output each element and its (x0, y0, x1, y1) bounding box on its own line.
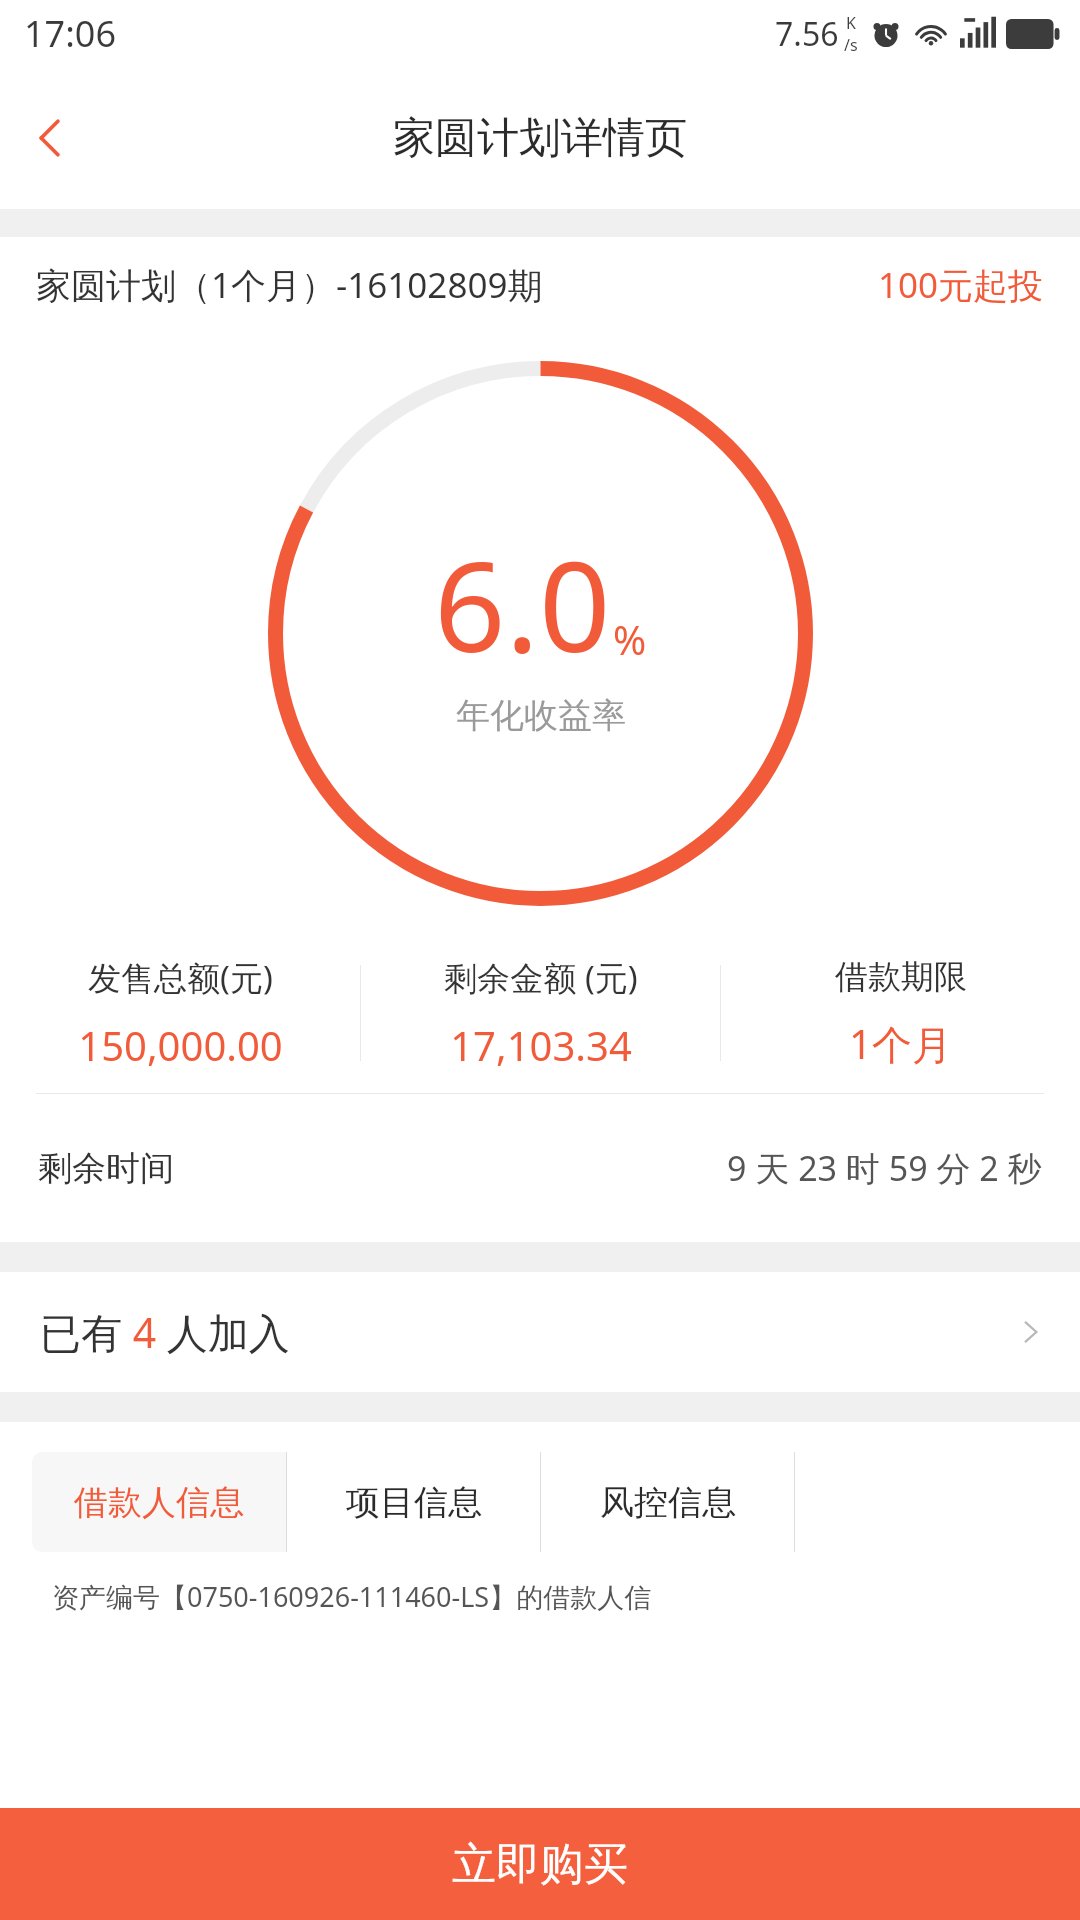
staticText: 9 天 23 时 59 分 2 秒 (727, 1145, 1042, 1191)
button[interactable]: 已有 4 人加入 (0, 1272, 1080, 1392)
staticText: /s (844, 34, 858, 56)
button[interactable]: 借款人信息 (32, 1452, 286, 1552)
staticText: % (613, 612, 647, 666)
staticText: 7.56 (775, 12, 839, 56)
staticText: 100元起投 (878, 261, 1044, 309)
button[interactable]: 项目信息 (287, 1452, 540, 1552)
staticText: 已有 4 人加入 (40, 1304, 1016, 1360)
staticText: 立即购买 (452, 1837, 628, 1892)
staticText: 资产编号【0750-160926-111460-LS】的借款人信 (52, 1578, 652, 1615)
staticText: 风控信息 (600, 1481, 736, 1524)
staticText: 剩余金额 (元) (444, 955, 638, 1000)
staticText: 家圆计划（1个月）-16102809期 (36, 261, 878, 309)
button[interactable]: 风控信息 (541, 1452, 794, 1552)
staticText: 17,103.34 (450, 1018, 632, 1072)
staticText: K (846, 12, 856, 34)
staticText: 剩余时间 (38, 1147, 727, 1190)
staticText: 家圆计划详情页 (393, 112, 687, 165)
staticText: 17:06 (24, 9, 117, 58)
staticText: 项目信息 (346, 1481, 482, 1524)
button[interactable]: 立即购买 (0, 1808, 1080, 1920)
staticText: 借款期限 (835, 956, 967, 998)
button[interactable]: Back (0, 88, 100, 188)
staticText: 6.0 (434, 518, 611, 688)
staticText: 年化收益率 (456, 694, 626, 737)
staticText: 1个月 (849, 1016, 952, 1071)
staticText: 发售总额(元) (88, 955, 273, 1000)
staticText: 150,000.00 (78, 1018, 283, 1072)
staticText: 借款人信息 (74, 1481, 244, 1524)
